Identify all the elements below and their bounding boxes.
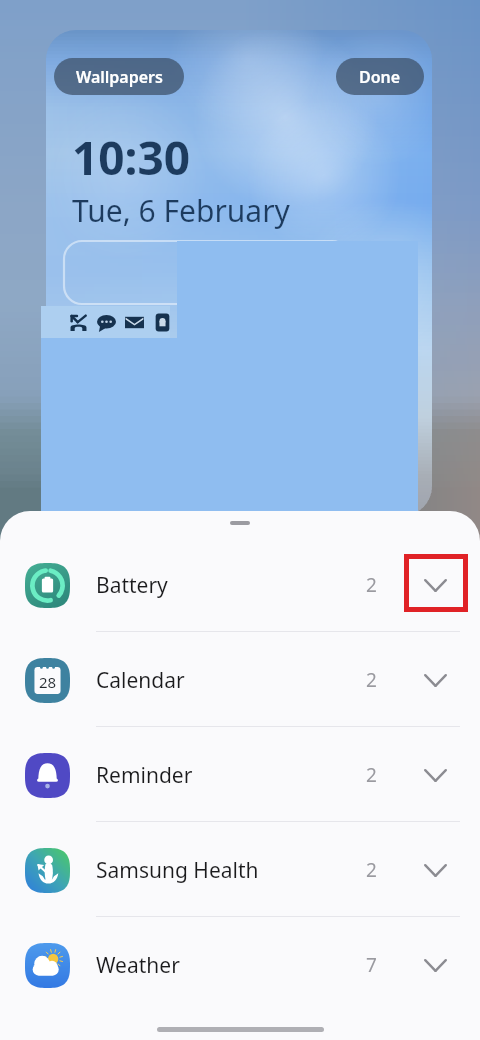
button[interactable]: Expand xyxy=(404,918,467,1012)
staticText: 7 xyxy=(366,952,377,978)
button[interactable]: Expand xyxy=(404,633,467,727)
staticText: Battery xyxy=(96,571,168,600)
button[interactable]: Weather xyxy=(0,918,480,1012)
staticText: Weather xyxy=(96,951,180,980)
staticText: 10:30 xyxy=(72,126,191,189)
staticText: Samsung Health xyxy=(96,856,259,885)
button[interactable]: Samsung Health xyxy=(0,823,480,917)
button[interactable]: Expand xyxy=(404,823,467,917)
staticText: 2 xyxy=(366,857,377,883)
button[interactable]: Expand xyxy=(404,538,467,632)
staticText: Done xyxy=(359,66,401,88)
staticText: 28 xyxy=(39,672,57,692)
staticText: Wallpapers xyxy=(76,66,163,88)
button[interactable]: 28 xyxy=(0,633,480,727)
staticText: Tue, 6 February xyxy=(72,190,290,231)
button[interactable]: Wallpapers xyxy=(54,58,184,95)
staticText: Calendar xyxy=(96,666,185,695)
button[interactable]: Reminder xyxy=(0,728,480,822)
button[interactable]: Expand xyxy=(404,728,467,822)
button[interactable]: Done xyxy=(336,58,424,95)
staticText: Reminder xyxy=(96,761,193,790)
staticText: 2 xyxy=(366,667,377,693)
staticText: 2 xyxy=(366,762,377,788)
staticText: 2 xyxy=(366,572,377,598)
button[interactable]: Battery xyxy=(0,538,480,632)
